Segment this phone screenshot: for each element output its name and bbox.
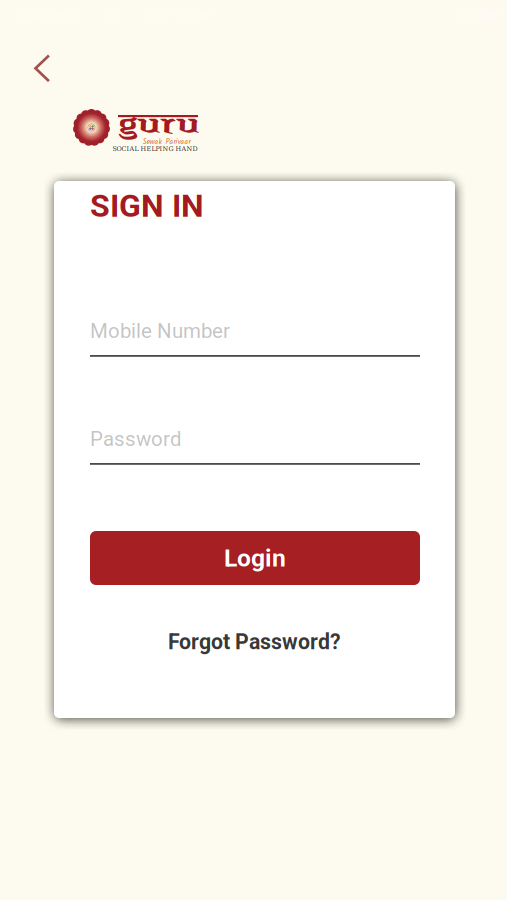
button[interactable]: Forgot Password? xyxy=(54,627,455,657)
button[interactable]: Back xyxy=(20,42,64,95)
staticText: guru xyxy=(118,102,200,169)
staticText: Login xyxy=(224,543,286,572)
staticText: Sewak Parivaar xyxy=(142,136,190,148)
button[interactable]: Login xyxy=(90,531,420,585)
staticText: SOCIAL HELPING HAND xyxy=(112,145,197,152)
staticText: Mobile Number xyxy=(90,319,230,343)
staticText: Password xyxy=(90,427,182,451)
staticText: Forgot Password? xyxy=(168,629,341,654)
staticText: SIGN IN xyxy=(90,187,204,224)
